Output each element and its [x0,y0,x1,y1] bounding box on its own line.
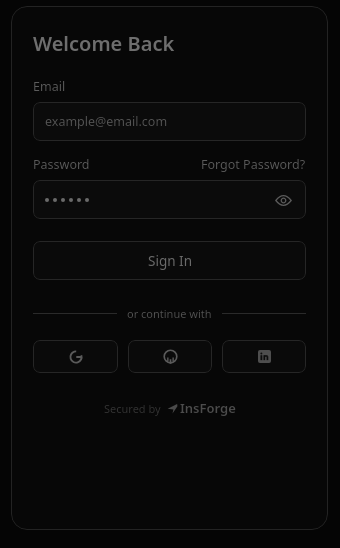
button[interactable]: example@email.com [33,102,306,141]
button[interactable]: Show password [33,180,306,219]
button[interactable]: Sign in with GitHub [128,340,212,373]
staticText: Forgot Password? [201,156,306,173]
staticText: Password [33,156,90,173]
staticText: Secured by [104,401,161,416]
staticText: Sign In [148,252,192,270]
staticText: example@email.com [45,113,168,130]
staticText: or continue with [127,306,212,321]
staticText: InsForge [180,399,236,417]
staticText: Email [33,78,66,95]
button[interactable]: Sign in with LinkedIn [222,340,306,373]
button[interactable]: Sign in with Google [33,340,118,373]
button[interactable]: Sign In [33,241,306,280]
button[interactable]: Show password [272,189,294,211]
button[interactable]: Forgot Password? [201,156,306,173]
staticText: Welcome Back [33,30,175,57]
